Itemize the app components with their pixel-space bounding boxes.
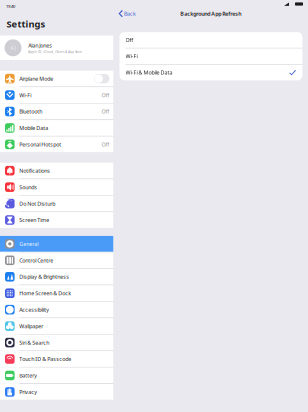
staticText: Sounds bbox=[19, 184, 37, 191]
staticText: Notifications bbox=[19, 167, 50, 174]
staticText: 19:40 bbox=[6, 3, 15, 9]
staticText: Battery bbox=[19, 372, 37, 379]
staticText: Wi-Fi & Mobile Data bbox=[125, 69, 172, 76]
staticText: Wi-Fi bbox=[125, 53, 137, 60]
staticText: Alan Jones bbox=[28, 42, 52, 49]
button[interactable]: Off bbox=[119, 32, 302, 48]
staticText: AJ bbox=[10, 44, 15, 51]
button[interactable]: Do Not Disturb bbox=[0, 196, 113, 211]
button[interactable]: Siri & Search bbox=[0, 335, 113, 350]
button[interactable]: AJ bbox=[0, 35, 113, 60]
staticText: Control Centre bbox=[19, 257, 53, 264]
staticText: Settings bbox=[6, 18, 45, 30]
button[interactable]: Accessibility bbox=[0, 302, 113, 318]
staticText: Accessibility bbox=[19, 306, 49, 313]
staticText: Off bbox=[101, 91, 109, 99]
staticText: General bbox=[19, 240, 38, 247]
button[interactable]: Wi-Fi & Mobile Data bbox=[119, 65, 302, 80]
staticText: Siri & Search bbox=[19, 339, 49, 346]
button[interactable]: General bbox=[0, 236, 113, 252]
staticText: Privacy bbox=[19, 388, 37, 395]
staticText: Off bbox=[125, 36, 133, 43]
button[interactable]: Screen Time bbox=[0, 212, 113, 228]
staticText: Off bbox=[101, 108, 109, 115]
staticText: Display & Brightness bbox=[19, 273, 69, 280]
button[interactable]: Control Centre bbox=[0, 252, 113, 268]
button[interactable]: Home Screen & Dock bbox=[0, 285, 113, 301]
button[interactable]: Wallpaper bbox=[0, 318, 113, 334]
staticText: Wallpaper bbox=[19, 323, 43, 330]
button[interactable]: Mobile Data bbox=[0, 120, 113, 136]
button[interactable]: Privacy bbox=[0, 384, 113, 400]
staticText: Background App Refresh bbox=[180, 10, 241, 17]
staticText: Personal Hotspot bbox=[19, 141, 61, 148]
staticText: Home Screen & Dock bbox=[19, 290, 71, 297]
button[interactable]: Display & Brightness bbox=[0, 269, 113, 285]
button[interactable]: Back bbox=[113, 6, 141, 22]
button[interactable]: Airplane Mode bbox=[0, 71, 113, 86]
staticText: Back bbox=[124, 10, 136, 17]
button[interactable]: Wi-Fi bbox=[0, 87, 113, 103]
button[interactable]: Touch ID & Passcode bbox=[0, 351, 113, 367]
staticText: Wi-Fi bbox=[19, 91, 31, 99]
staticText: Off bbox=[101, 141, 109, 148]
button[interactable]: Sounds bbox=[0, 179, 113, 195]
button[interactable]: Battery bbox=[0, 367, 113, 383]
staticText: Screen Time bbox=[19, 216, 49, 224]
staticText: Airplane Mode bbox=[19, 75, 53, 82]
staticText: Apple ID, iCloud, iTunes & App Store bbox=[28, 50, 82, 54]
button[interactable]: Notifications bbox=[0, 163, 113, 179]
button[interactable]: Bluetooth bbox=[0, 104, 113, 119]
staticText: Bluetooth bbox=[19, 108, 42, 115]
staticText: Touch ID & Passcode bbox=[19, 355, 71, 363]
button[interactable]: Wi-Fi bbox=[119, 48, 302, 64]
staticText: Do Not Disturb bbox=[19, 200, 55, 207]
staticText: Mobile Data bbox=[19, 124, 48, 131]
button[interactable]: Personal Hotspot bbox=[0, 136, 113, 152]
